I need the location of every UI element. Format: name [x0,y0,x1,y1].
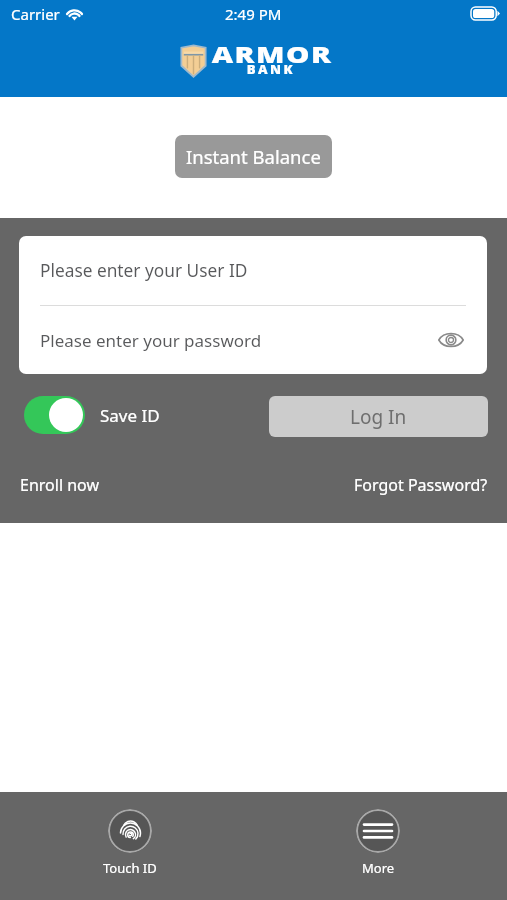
button[interactable]: Enroll now [12,466,107,504]
button[interactable]: More [346,807,410,879]
button[interactable]: Please enter your User ID [19,236,487,305]
staticText: Enroll now [20,474,99,496]
button[interactable]: Save ID [24,396,160,434]
staticText: More [362,859,395,877]
staticText: Please enter your password [40,329,262,352]
staticText: Please enter your User ID [40,259,248,283]
staticText: Carrier [11,4,60,24]
staticText: Instant Balance [186,144,321,169]
button[interactable]: Log In [269,396,488,437]
button[interactable]: Show password [436,325,466,355]
button[interactable]: Forgot Password? [346,466,496,504]
staticText: Log In [350,404,407,430]
staticText: Touch ID [103,859,157,877]
staticText: ARMOR [212,38,333,69]
button[interactable]: Please enter your password [19,306,487,374]
staticText: BANK [247,61,295,77]
button[interactable]: Instant Balance [175,135,332,178]
staticText: 2:49 PM [225,4,282,24]
button[interactable]: Touch ID [93,807,167,879]
staticText: Forgot Password? [354,474,488,496]
staticText: Save ID [100,404,160,427]
